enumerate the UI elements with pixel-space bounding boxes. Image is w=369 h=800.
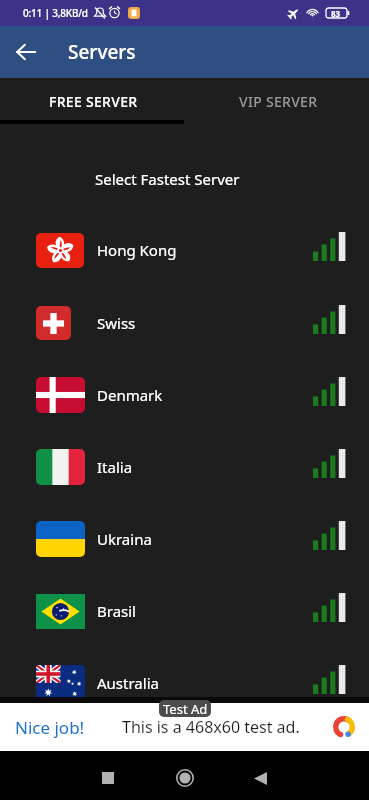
staticText: Brasil bbox=[97, 601, 136, 621]
button[interactable]: Back bbox=[0, 26, 52, 78]
staticText: Nice job! bbox=[15, 716, 85, 739]
button[interactable]: Ukraina bbox=[0, 503, 369, 575]
button[interactable]: Swiss bbox=[0, 287, 369, 359]
button[interactable]: Australia bbox=[0, 647, 369, 697]
button[interactable]: FREE SERVER bbox=[0, 78, 184, 120]
staticText: This is a 468x60 test ad. bbox=[122, 716, 300, 738]
button[interactable]: Denmark bbox=[0, 359, 369, 431]
staticText: Hong Kong bbox=[97, 240, 177, 260]
staticText: VIP SERVER bbox=[239, 92, 318, 111]
staticText: Test Ad bbox=[163, 700, 208, 717]
staticText: Ukraina bbox=[97, 529, 152, 549]
button[interactable]: Hong Kong bbox=[0, 214, 369, 286]
button[interactable]: Home bbox=[161, 754, 209, 800]
button[interactable]: Back bbox=[236, 754, 284, 800]
staticText: Denmark bbox=[97, 385, 163, 405]
staticText: Swiss bbox=[97, 313, 136, 333]
button[interactable]: Brasil bbox=[0, 575, 369, 647]
staticText: 83 bbox=[331, 8, 341, 19]
staticText: Servers bbox=[68, 39, 136, 65]
staticText: FREE SERVER bbox=[49, 92, 138, 111]
staticText: Select Fastest Server bbox=[95, 169, 240, 189]
staticText: Australia bbox=[97, 673, 159, 693]
staticText: 0:11 | 3,8KB/d bbox=[23, 6, 88, 20]
button[interactable]: Italia bbox=[0, 431, 369, 503]
button[interactable]: VIP SERVER bbox=[184, 78, 369, 120]
staticText: Italia bbox=[97, 457, 133, 477]
button[interactable]: Recent apps bbox=[84, 754, 132, 800]
